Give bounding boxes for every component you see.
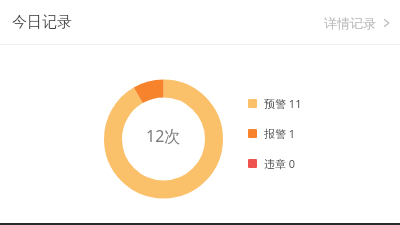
staticText: 报警 1: [264, 126, 296, 140]
staticText: 12次: [146, 125, 181, 147]
button[interactable]: 违章 0: [248, 156, 296, 170]
staticText: 详情记录: [324, 15, 376, 31]
button[interactable]: 报警 1: [248, 126, 296, 140]
staticText: 今日记录: [12, 13, 72, 32]
button[interactable]: 详情记录: [324, 15, 390, 31]
staticText: 预警 11: [264, 96, 302, 110]
staticText: 违章 0: [264, 156, 296, 170]
button[interactable]: 今日记录: [12, 13, 72, 32]
button[interactable]: 预警 11: [248, 96, 302, 110]
